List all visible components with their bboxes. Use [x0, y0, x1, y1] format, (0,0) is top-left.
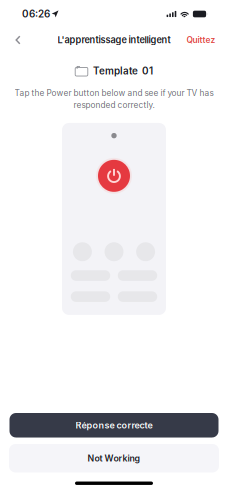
staticText: 06:26: [22, 8, 50, 20]
staticText: L'apprentissage intelligent: [57, 34, 170, 45]
button[interactable]: Not Working: [9, 444, 219, 472]
button[interactable]: Power: [96, 158, 132, 194]
staticText: Réponse correcte: [75, 420, 152, 431]
staticText: Template 01: [93, 65, 153, 77]
staticText: Not Working: [87, 453, 140, 463]
staticText: responded correctly.: [73, 100, 154, 110]
button[interactable]: Réponse correcte: [9, 413, 218, 437]
staticText: Quittez: [186, 35, 215, 45]
staticText: Tap the Power button below and see if yo…: [14, 88, 213, 98]
button[interactable]: Quittez: [181, 28, 221, 52]
button[interactable]: Back: [5, 28, 31, 52]
